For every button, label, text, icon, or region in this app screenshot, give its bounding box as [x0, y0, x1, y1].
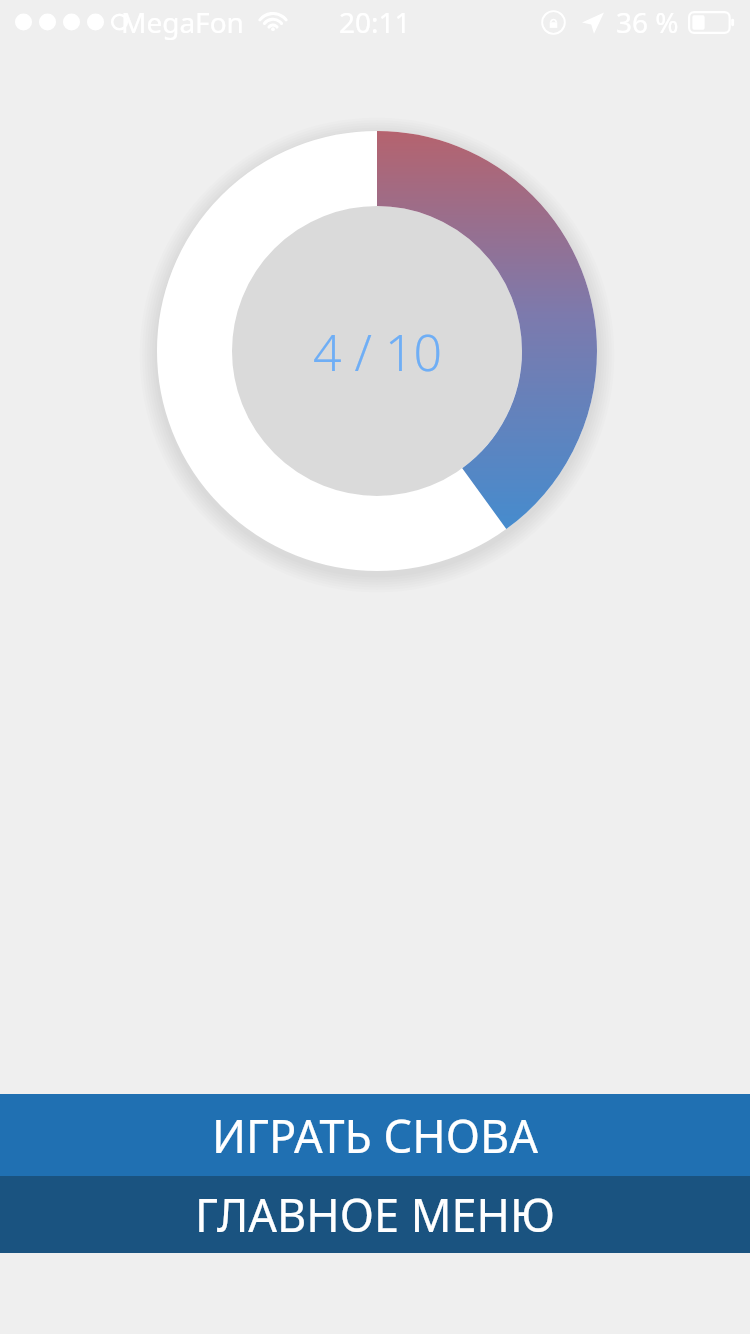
button[interactable]: ГЛАВНОЕ МЕНЮ [0, 1176, 750, 1253]
staticText: 36 % [616, 3, 679, 41]
button[interactable]: ИГРАТЬ СНОВА [0, 1094, 750, 1176]
staticText: ИГРАТЬ СНОВА [212, 1105, 538, 1166]
staticText: 4 / 10 [313, 318, 442, 386]
staticText: ГЛАВНОЕ МЕНЮ [195, 1184, 555, 1245]
staticText: MegaFon [121, 3, 244, 41]
staticText: 20:11 [339, 3, 411, 41]
